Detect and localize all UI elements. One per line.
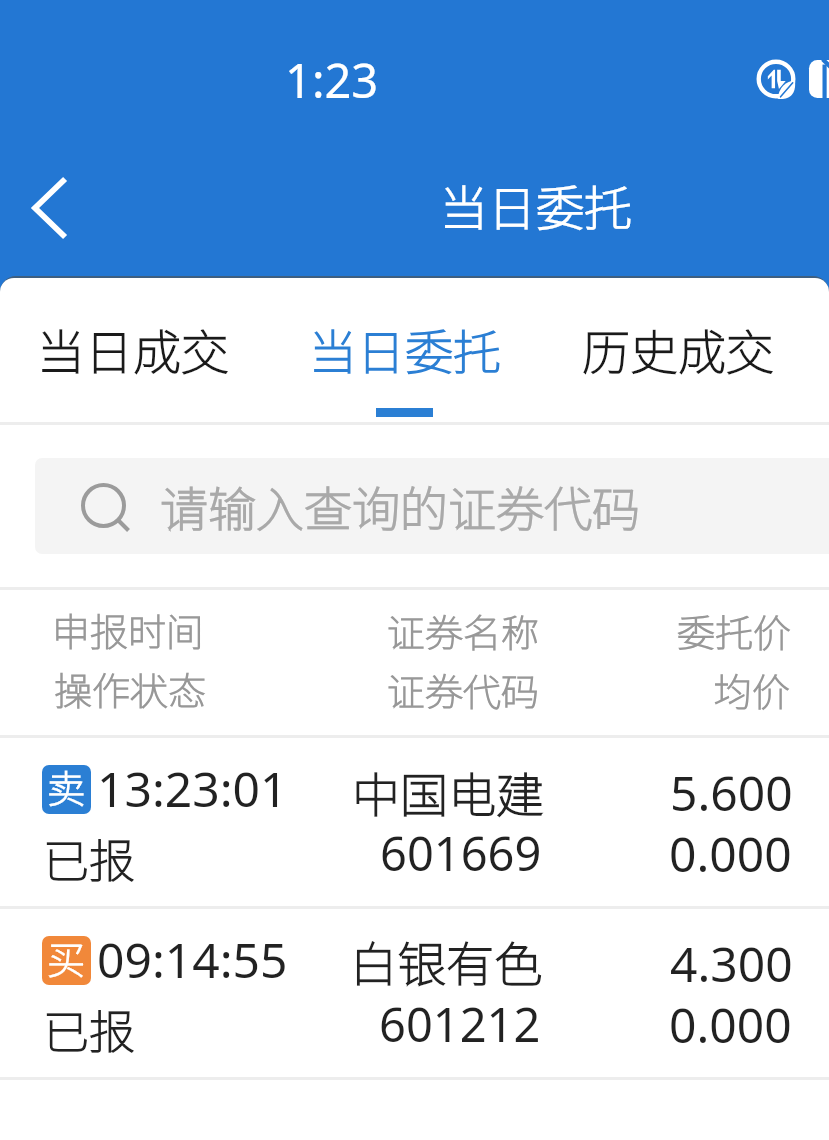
staticText: 1:23 <box>285 48 379 112</box>
staticText: 当日委托 <box>440 170 633 240</box>
button[interactable]: Data saver <box>757 60 795 98</box>
staticText: 601669 <box>380 821 542 885</box>
staticText: 当日成交 <box>37 314 230 384</box>
button[interactable] <box>0 907 829 1078</box>
staticText: 白银有色 <box>350 926 543 996</box>
staticText: 历史成交 <box>582 314 775 384</box>
staticText: 卖 <box>47 765 86 808</box>
staticText: 已报 <box>43 996 135 1063</box>
button[interactable]: Search securities code <box>35 458 829 554</box>
staticText: 均价 <box>714 662 791 717</box>
staticText: 申报时间 <box>52 602 205 657</box>
staticText: 证券名称 <box>387 603 540 658</box>
staticText: 委托价 <box>677 603 792 658</box>
staticText: 证券代码 <box>387 662 540 717</box>
staticText: 买 <box>47 936 86 979</box>
button[interactable] <box>271 278 541 423</box>
staticText: 4.300 <box>670 931 793 996</box>
staticText: 0.000 <box>669 992 792 1057</box>
staticText: 13:23:01 <box>97 756 288 821</box>
staticText: 已报 <box>43 825 135 892</box>
staticText: 09:14:55 <box>97 927 288 992</box>
staticText: 5.600 <box>670 760 793 825</box>
button[interactable]: NFC <box>809 60 829 98</box>
staticText: 中国电建 <box>352 757 545 827</box>
staticText: 当日委托 <box>309 314 502 384</box>
staticText: 601212 <box>379 992 541 1056</box>
staticText: 0.000 <box>669 821 792 886</box>
button[interactable] <box>0 278 271 423</box>
staticText: 操作状态 <box>54 661 207 716</box>
staticText: 请输入查询的证券代码 <box>160 471 641 541</box>
button[interactable] <box>541 278 829 423</box>
button[interactable]: Back <box>2 161 96 255</box>
button[interactable] <box>0 736 829 907</box>
